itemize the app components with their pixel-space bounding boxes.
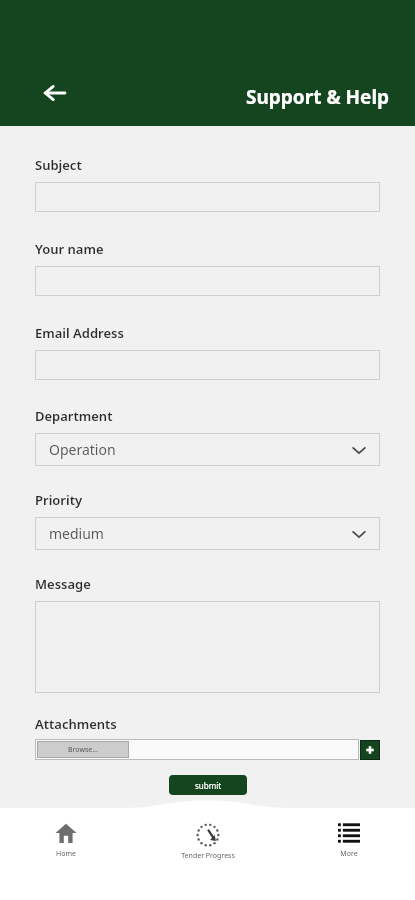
staticText: Department xyxy=(35,407,113,425)
staticText: submit xyxy=(195,780,222,791)
staticText: Home xyxy=(56,849,76,859)
staticText: Email Address xyxy=(35,324,124,342)
staticText: More xyxy=(340,849,358,859)
button[interactable] xyxy=(35,266,380,296)
button[interactable]: Operation xyxy=(35,433,380,466)
button[interactable]: medium xyxy=(35,517,380,550)
button[interactable]: Add attachment xyxy=(360,740,380,760)
staticText: Browse... xyxy=(68,745,98,755)
staticText: Your name xyxy=(35,240,104,258)
staticText: Attachments xyxy=(35,715,117,733)
staticText: Support & Help xyxy=(246,84,390,110)
button[interactable] xyxy=(35,350,380,380)
button[interactable]: Browse... xyxy=(37,741,129,758)
staticText: Subject xyxy=(35,156,82,174)
button[interactable] xyxy=(35,182,380,212)
staticText: Tender Progress xyxy=(181,851,235,861)
button[interactable] xyxy=(35,601,380,693)
button[interactable]: More xyxy=(304,822,394,859)
button[interactable]: Back xyxy=(40,78,70,108)
staticText: Operation xyxy=(49,440,116,459)
button[interactable]: Home xyxy=(21,822,111,859)
staticText: medium xyxy=(49,524,104,543)
staticText: Message xyxy=(35,575,91,593)
button[interactable]: submit xyxy=(169,775,247,795)
staticText: Priority xyxy=(35,491,83,509)
button[interactable]: Tender Progress xyxy=(153,822,263,861)
